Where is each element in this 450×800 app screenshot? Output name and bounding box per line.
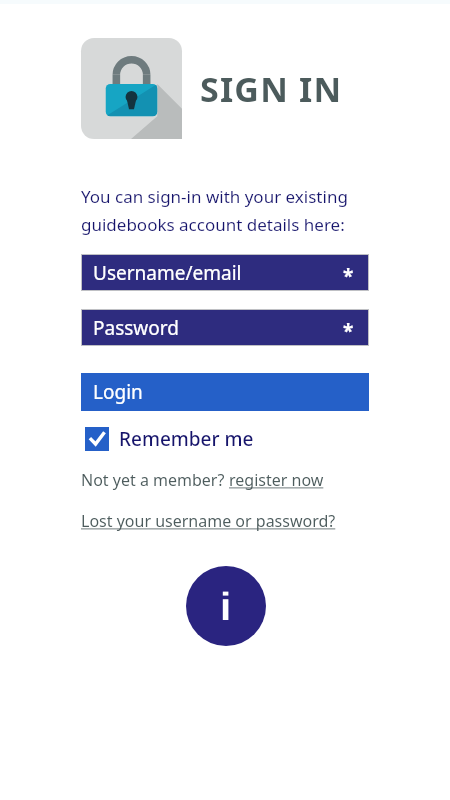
staticText: SIGN IN	[200, 66, 343, 112]
button[interactable]: Lost your username or password?	[81, 510, 336, 532]
staticText: *	[343, 263, 354, 289]
staticText: Password	[93, 315, 179, 341]
button[interactable]: register now	[229, 469, 324, 491]
button[interactable]: Information	[186, 566, 266, 646]
staticText: guidebooks account details here:	[81, 213, 345, 236]
staticText: Not yet a member?	[81, 469, 229, 491]
staticText: *	[343, 318, 354, 344]
button[interactable]: Username/email	[81, 254, 369, 291]
staticText: Login	[93, 379, 143, 405]
button[interactable]: Remember me	[85, 426, 254, 452]
staticText: Lost your username or password?	[81, 510, 336, 532]
button[interactable]: Login	[81, 373, 369, 411]
staticText: Username/email	[93, 260, 242, 286]
staticText: Remember me	[119, 426, 254, 452]
staticText: You can sign-in with your existing	[81, 185, 348, 208]
button[interactable]: Password	[81, 309, 369, 346]
staticText: register now	[229, 469, 324, 491]
